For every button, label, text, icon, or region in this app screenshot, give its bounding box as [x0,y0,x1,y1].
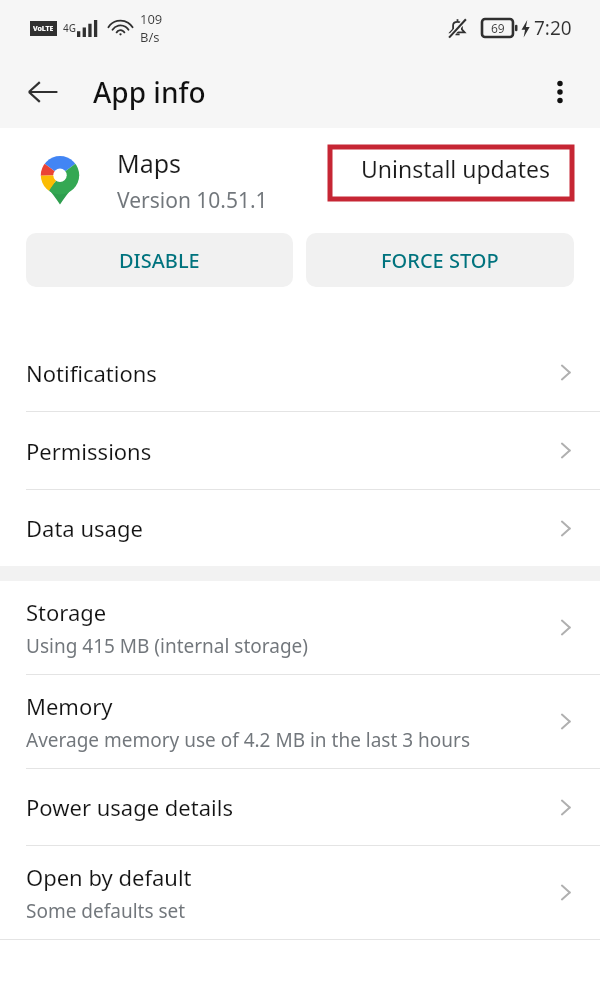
staticText: FORCE STOP [381,247,499,274]
staticText: Memory [26,691,113,721]
button[interactable]: Notifications [0,334,600,411]
staticText: Data usage [26,513,143,543]
button[interactable]: FORCE STOP [306,233,574,287]
staticText: VoLTE [33,24,54,34]
staticText: Open by default [26,862,192,892]
staticText: Version 10.51.1 [117,186,268,215]
button[interactable]: More options [534,66,586,118]
staticText: Storage [26,597,107,627]
staticText: 69 [491,20,505,36]
staticText: 109 [140,10,163,28]
button[interactable]: Uninstall updates [330,129,580,208]
staticText: Notifications [26,358,157,388]
button[interactable]: Permissions [0,412,600,489]
staticText: 7:20 [534,15,572,41]
staticText: Average memory use of 4.2 MB in the last… [26,727,470,753]
staticText: App info [93,73,206,111]
staticText: B/s [140,28,160,46]
button[interactable]: Memory [0,675,600,768]
staticText: Maps [117,146,182,180]
staticText: Uninstall updates [361,153,550,184]
staticText: 4G [63,21,76,35]
staticText: Permissions [26,436,152,466]
button[interactable]: DISABLE [26,233,293,287]
staticText: DISABLE [119,247,200,274]
button[interactable]: Data usage [0,490,600,566]
staticText: Some defaults set [26,898,186,924]
button[interactable]: Storage [0,581,600,674]
button[interactable]: Open by default [0,846,600,939]
button[interactable]: Power usage details [0,769,600,845]
button[interactable]: Back [16,65,70,119]
staticText: Using 415 MB (internal storage) [26,633,309,659]
staticText: Power usage details [26,792,233,822]
